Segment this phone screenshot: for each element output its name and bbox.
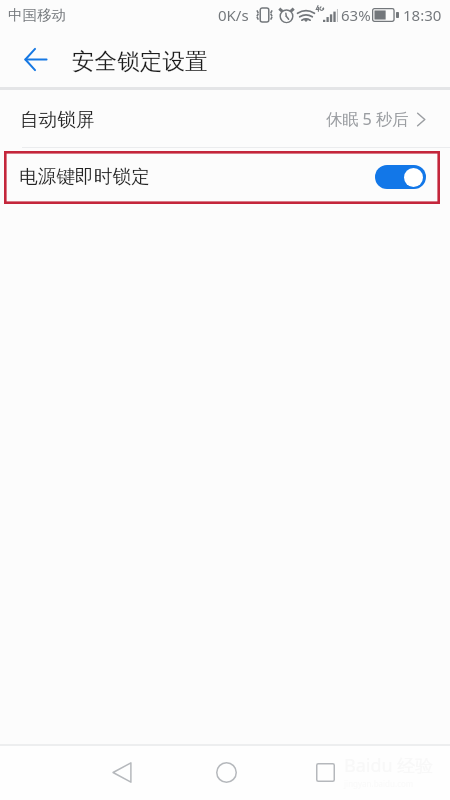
staticText: 安全锁定设置 <box>72 47 208 75</box>
staticText: 63% <box>341 5 371 25</box>
button[interactable]: Power key instant lock switch <box>375 165 426 189</box>
staticText: 自动锁屏 <box>20 108 95 131</box>
staticText: 0K/s <box>218 5 249 25</box>
staticText: 电源键即时锁定 <box>19 165 150 188</box>
staticText: 休眠 5 秒后 <box>326 108 409 130</box>
staticText: 18:30 <box>403 5 442 25</box>
button[interactable]: Back <box>102 752 142 792</box>
button[interactable]: Home <box>206 752 246 792</box>
staticText: 中国移动 <box>8 6 66 24</box>
button[interactable]: Back <box>13 37 57 81</box>
button[interactable]: 自动锁屏 <box>0 91 450 147</box>
button[interactable]: Recent apps <box>305 752 345 792</box>
button[interactable]: 电源键即时锁定 <box>0 148 450 205</box>
